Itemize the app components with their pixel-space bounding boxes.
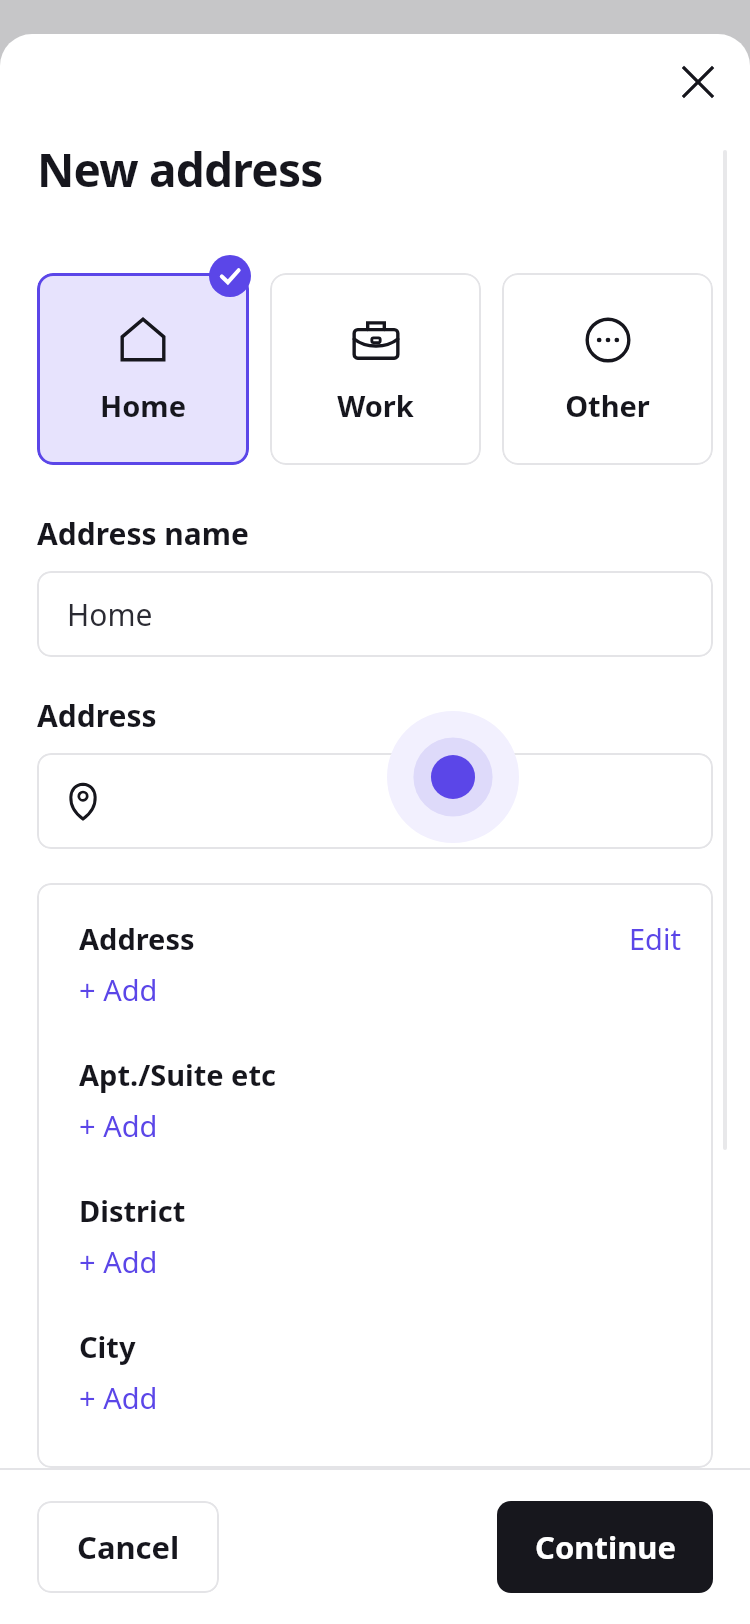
staticText: + Add xyxy=(79,1242,158,1281)
button[interactable]: Work xyxy=(270,273,481,465)
button[interactable]: Edit xyxy=(629,919,681,958)
button[interactable]: Home xyxy=(37,571,713,657)
staticText: Home xyxy=(67,594,153,635)
button[interactable]: Home xyxy=(37,273,249,465)
staticText: Address xyxy=(79,919,195,958)
staticText: Home xyxy=(100,386,186,425)
staticText: Address name xyxy=(37,513,249,554)
button[interactable]: + Add xyxy=(79,1242,158,1281)
button[interactable]: + Add xyxy=(79,970,158,1009)
staticText: New address xyxy=(37,138,323,201)
staticText: Continue xyxy=(535,1526,676,1568)
staticText: City xyxy=(79,1327,136,1366)
button[interactable]: Other xyxy=(502,273,713,465)
staticText: Apt./Suite etc xyxy=(79,1055,276,1094)
staticText: + Add xyxy=(79,970,158,1009)
staticText: Other xyxy=(565,386,650,425)
button[interactable]: + Add xyxy=(79,1378,158,1417)
button[interactable] xyxy=(37,753,713,849)
button[interactable]: Close xyxy=(672,56,724,108)
staticText: Cancel xyxy=(77,1526,180,1568)
staticText: District xyxy=(79,1191,186,1230)
staticText: Work xyxy=(337,386,414,425)
staticText: + Add xyxy=(79,1378,158,1417)
button[interactable]: Cancel xyxy=(37,1501,219,1593)
button[interactable]: + Add xyxy=(79,1106,158,1145)
staticText: Address xyxy=(37,695,157,736)
staticText: Edit xyxy=(629,919,681,958)
button[interactable]: Continue xyxy=(497,1501,713,1593)
staticText: + Add xyxy=(79,1106,158,1145)
